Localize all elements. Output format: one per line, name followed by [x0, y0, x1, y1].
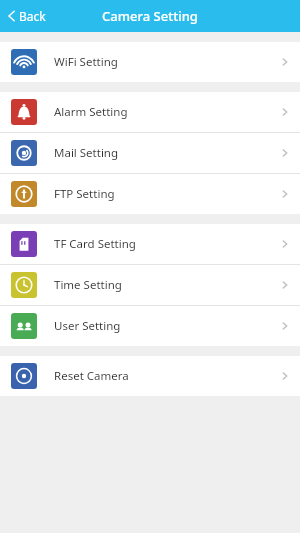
- staticText: Time Setting: [54, 277, 122, 293]
- button[interactable]: FTP Setting: [0, 174, 300, 214]
- button[interactable]: TF Card Setting: [0, 224, 300, 264]
- staticText: Reset Camera: [54, 368, 129, 384]
- button[interactable]: Time Setting: [0, 265, 300, 305]
- staticText: Alarm Setting: [54, 104, 128, 120]
- staticText: WiFi Setting: [54, 54, 118, 70]
- staticText: Back: [19, 8, 46, 24]
- button[interactable]: Back: [0, 0, 54, 32]
- button[interactable]: WiFi Setting: [0, 42, 300, 82]
- staticText: User Setting: [54, 318, 121, 334]
- staticText: Mail Setting: [54, 145, 119, 161]
- staticText: Camera Setting: [102, 7, 198, 25]
- button[interactable]: Reset Camera: [0, 356, 300, 396]
- staticText: FTP Setting: [54, 186, 115, 202]
- button[interactable]: Mail Setting: [0, 133, 300, 173]
- button[interactable]: User Setting: [0, 306, 300, 346]
- staticText: TF Card Setting: [54, 236, 136, 252]
- button[interactable]: Alarm Setting: [0, 92, 300, 132]
